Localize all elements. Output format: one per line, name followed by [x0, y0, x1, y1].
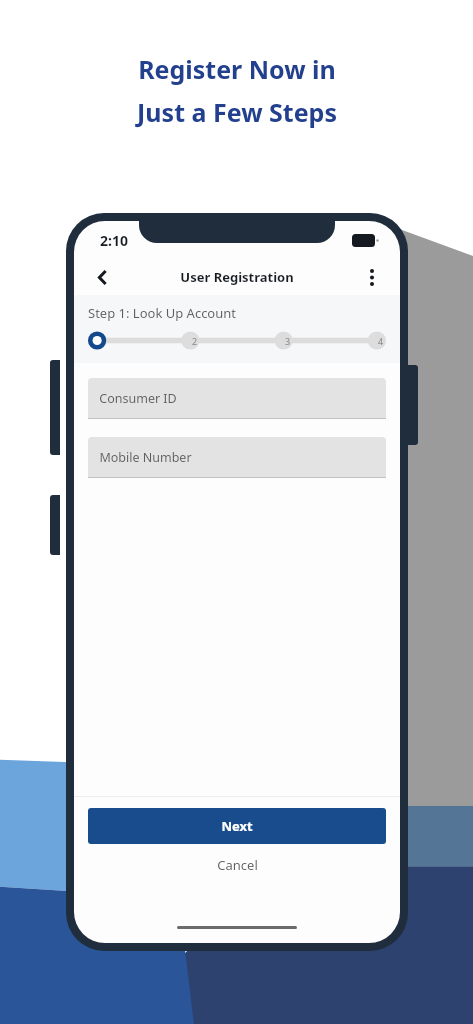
- staticText: Step 1: Look Up Account: [88, 304, 236, 322]
- staticText: Cancel: [217, 856, 258, 874]
- button[interactable]: Mobile Number: [88, 437, 386, 478]
- button[interactable]: Cancel: [74, 844, 400, 886]
- staticText: User Registration: [180, 268, 294, 286]
- button[interactable]: Back: [86, 261, 118, 293]
- staticText: Consumer ID: [99, 390, 177, 407]
- button[interactable]: Next: [88, 808, 386, 844]
- button[interactable]: More options: [357, 262, 387, 292]
- button[interactable]: Consumer ID: [88, 378, 386, 419]
- staticText: Just a Few Steps: [137, 95, 337, 129]
- staticText: 2:10: [100, 231, 128, 250]
- staticText: Register Now in: [138, 52, 336, 86]
- staticText: Next: [221, 817, 253, 835]
- staticText: Mobile Number: [99, 449, 192, 466]
